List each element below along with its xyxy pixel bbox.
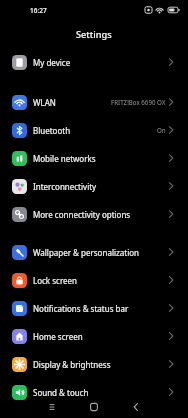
button[interactable]: Interconnectivity — [0, 172, 188, 200]
button[interactable]: Mobile networks — [0, 144, 188, 172]
staticText: 16:27 — [30, 6, 47, 15]
button[interactable]: Sound & touch — [0, 378, 188, 406]
button[interactable] — [42, 399, 62, 415]
staticText: Mobile networks — [33, 153, 96, 164]
staticText: Settings — [76, 28, 112, 41]
staticText: Home screen — [33, 331, 83, 342]
button[interactable]: WLAN — [0, 88, 188, 116]
staticText: Bluetooth — [33, 125, 71, 136]
staticText: FRITZ!Box 6690 OX — [111, 98, 166, 106]
staticText: Sound & touch — [33, 387, 89, 398]
button[interactable]: Lock screen — [0, 266, 188, 294]
button[interactable]: Wallpaper & personalization — [0, 238, 188, 266]
button[interactable]: My device — [0, 48, 188, 76]
staticText: Display & brightness — [33, 359, 111, 370]
button[interactable] — [84, 399, 104, 415]
staticText: WLAN — [33, 97, 56, 108]
button[interactable]: More connectivity options — [0, 200, 188, 228]
staticText: Wallpaper & personalization — [33, 247, 140, 258]
button[interactable]: Display & brightness — [0, 350, 188, 378]
button[interactable]: Bluetooth — [0, 116, 188, 144]
button[interactable] — [126, 399, 146, 415]
staticText: Interconnectivity — [33, 181, 97, 192]
staticText: More connectivity options — [33, 209, 131, 220]
staticText: Notifications & status bar — [33, 303, 129, 314]
staticText: My device — [33, 57, 71, 68]
button[interactable]: Notifications & status bar — [0, 294, 188, 322]
staticText: On — [157, 126, 166, 134]
button[interactable]: Home screen — [0, 322, 188, 350]
staticText: Lock screen — [33, 275, 78, 286]
